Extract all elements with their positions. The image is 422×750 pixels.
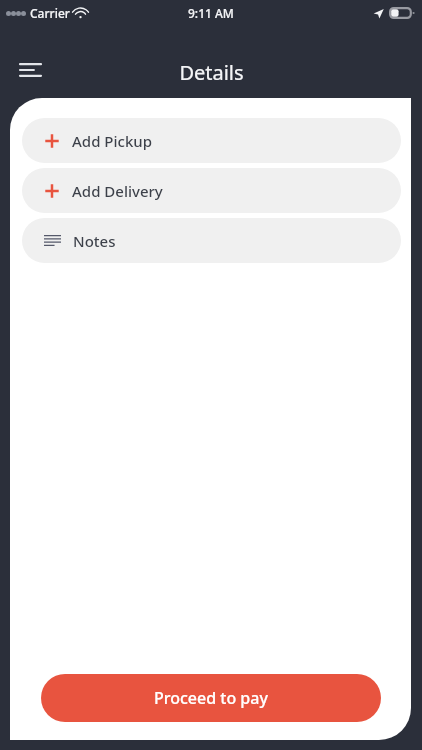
staticText: Details: [179, 59, 244, 86]
button[interactable]: Proceed to pay: [41, 674, 381, 722]
staticText: Notes: [73, 231, 116, 251]
staticText: Add Pickup: [72, 131, 152, 151]
button[interactable]: Menu: [8, 48, 52, 92]
button[interactable]: Add Delivery: [22, 168, 401, 213]
staticText: Carrier: [30, 5, 70, 21]
staticText: Add Delivery: [72, 181, 163, 201]
staticText: 9:11 AM: [188, 5, 234, 21]
staticText: Proceed to pay: [154, 687, 268, 709]
button[interactable]: Notes: [22, 218, 401, 263]
button[interactable]: Add Pickup: [22, 118, 401, 163]
